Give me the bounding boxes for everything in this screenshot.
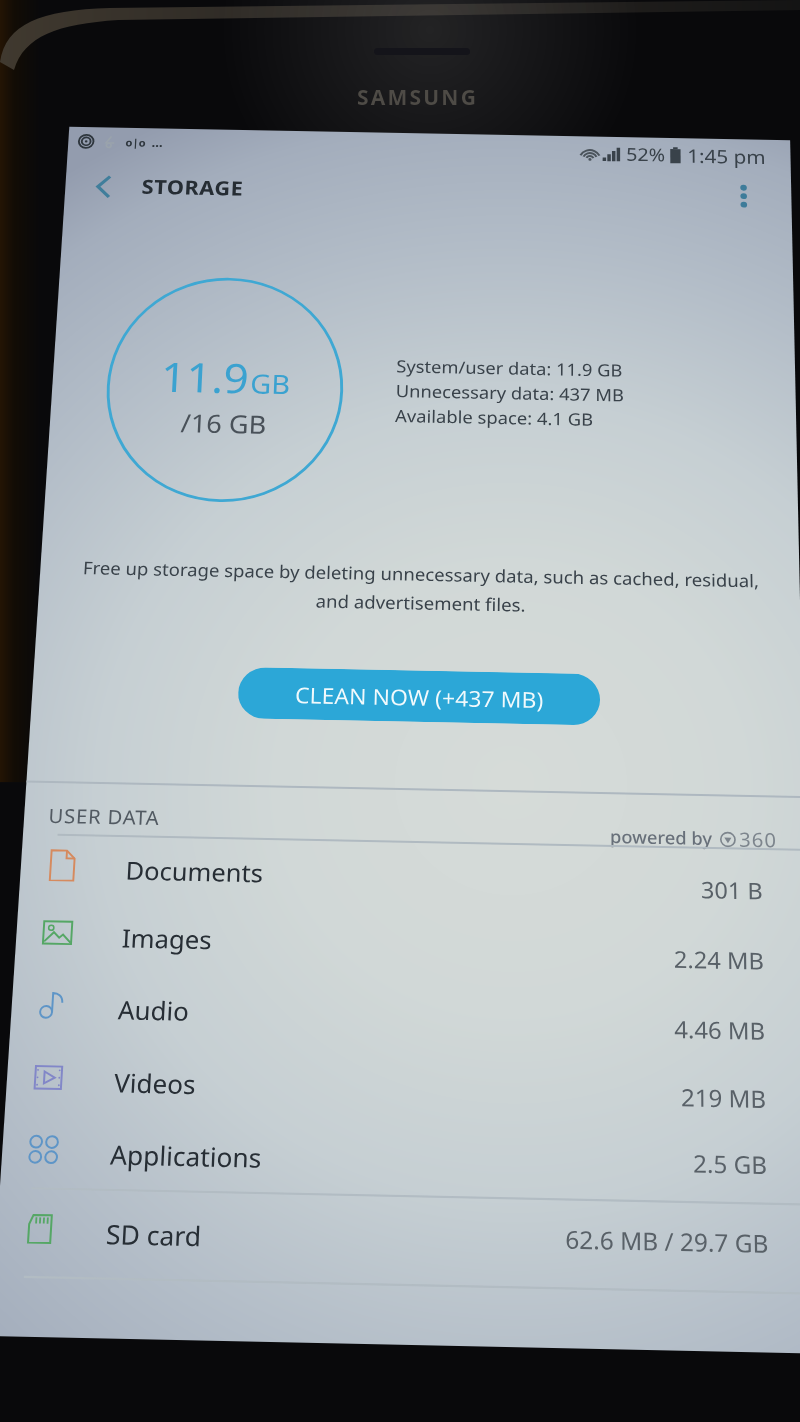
staticText: o|o: [125, 135, 146, 149]
staticText: Free up storage space by deleting unnece…: [82, 556, 759, 593]
staticText: Images: [121, 920, 213, 956]
staticText: 1:45 pm: [687, 142, 766, 169]
staticText: Unnecessary data: 437 MB: [395, 379, 625, 407]
staticText: 11.9: [159, 348, 251, 406]
staticText: /16 GB: [180, 405, 268, 441]
staticText: 301 B: [701, 873, 764, 905]
button[interactable]: Audio: [9, 973, 800, 1057]
staticText: SD card: [105, 1215, 202, 1254]
staticText: USER DATA: [48, 802, 161, 831]
button[interactable]: Images: [14, 902, 800, 985]
staticText: and advertisement files.: [315, 589, 526, 617]
staticText: 62.6 MB / 29.7 GB: [565, 1222, 769, 1259]
staticText: 2.24 MB: [674, 943, 765, 976]
button[interactable]: Videos: [5, 1046, 800, 1131]
staticText: Videos: [113, 1064, 197, 1101]
button[interactable]: Documents: [19, 835, 800, 916]
staticText: ...: [151, 134, 163, 150]
staticText: 4.46 MB: [674, 1012, 766, 1046]
staticText: GB: [249, 365, 291, 402]
button[interactable]: SD card: [0, 1196, 800, 1284]
button[interactable]: Back: [79, 166, 127, 207]
staticText: 52%: [626, 142, 666, 167]
staticText: SAMSUNG: [357, 83, 479, 112]
staticText: System/user data: 11.9 GB: [396, 355, 623, 382]
staticText: Applications: [109, 1136, 262, 1175]
staticText: 219 MB: [681, 1080, 767, 1114]
staticText: Documents: [125, 853, 264, 889]
button[interactable]: More options: [721, 176, 765, 216]
staticText: powered by: [610, 824, 713, 851]
staticText: Audio: [117, 992, 190, 1028]
staticText: 2.5 GB: [693, 1146, 768, 1180]
staticText: CLEAN NOW (+437 MB): [295, 679, 544, 714]
button[interactable]: CLEAN NOW (+437 MB): [237, 667, 600, 725]
staticText: Available space: 4.1 GB: [395, 404, 594, 431]
button[interactable]: Applications: [0, 1117, 800, 1204]
staticText: STORAGE: [141, 173, 244, 201]
staticText: 360: [739, 826, 778, 853]
